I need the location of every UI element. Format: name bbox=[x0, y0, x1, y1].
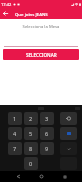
button[interactable]: Backspace bbox=[60, 112, 77, 125]
staticText: SELECCIONAR bbox=[26, 52, 57, 58]
staticText: 5 bbox=[29, 130, 33, 137]
staticText: 4 bbox=[13, 130, 17, 137]
button[interactable]: Enter bbox=[60, 142, 77, 155]
button[interactable]: 9 bbox=[40, 142, 54, 155]
button[interactable]: 4 bbox=[8, 127, 22, 140]
button[interactable]: 8 bbox=[24, 142, 38, 155]
button[interactable]: 1 bbox=[8, 112, 22, 125]
staticText: 6 bbox=[45, 130, 49, 137]
staticText: 9 bbox=[45, 145, 49, 152]
button[interactable]: 0 bbox=[24, 157, 38, 170]
button[interactable]: Back bbox=[0, 8, 11, 19]
staticText: 2 bbox=[29, 115, 33, 122]
staticText: 1 bbox=[13, 115, 17, 122]
button[interactable]: 7 bbox=[8, 142, 22, 155]
staticText: 8 bbox=[29, 145, 33, 152]
staticText: Que joins JEANS bbox=[15, 11, 48, 17]
staticText: 0 bbox=[29, 160, 33, 167]
staticText: Selecciona la Mesa bbox=[0, 24, 82, 30]
staticText: 7 bbox=[13, 145, 17, 152]
button[interactable]: 6 bbox=[40, 127, 54, 140]
button[interactable]: 2 bbox=[24, 112, 38, 125]
button[interactable]: Back bbox=[12, 171, 24, 182]
button[interactable]: 5 bbox=[24, 127, 38, 140]
button[interactable]: 3 bbox=[40, 112, 54, 125]
button[interactable]: SELECCIONAR bbox=[3, 49, 79, 60]
staticText: 17:42 bbox=[1, 2, 12, 7]
button[interactable]: Emoji bbox=[60, 127, 77, 140]
button[interactable]: Recents bbox=[59, 171, 71, 182]
staticText: 3 bbox=[45, 115, 49, 122]
button[interactable]: Home bbox=[35, 171, 47, 182]
